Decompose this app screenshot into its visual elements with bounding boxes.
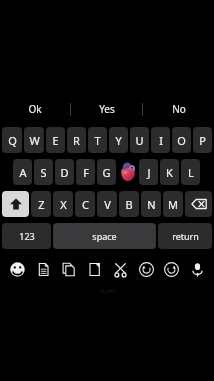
button[interactable]: G — [97, 159, 116, 185]
staticText: X — [60, 197, 67, 212]
button[interactable]: Redo — [160, 258, 182, 280]
button[interactable]: A — [13, 159, 32, 185]
button[interactable]: Backspace — [185, 191, 212, 217]
staticText: INLAM — [99, 288, 115, 295]
staticText: K — [166, 165, 173, 180]
button[interactable]: U — [130, 127, 149, 153]
button[interactable]: W — [24, 127, 44, 153]
button[interactable]: P — [193, 127, 212, 153]
staticText: P — [199, 133, 206, 148]
button[interactable]: V — [97, 191, 117, 217]
staticText: R — [73, 133, 80, 148]
staticText: return — [172, 230, 199, 242]
staticText: U — [135, 133, 144, 148]
button[interactable]: Yes — [71, 95, 142, 123]
staticText: I — [159, 133, 163, 148]
button[interactable]: Shift — [2, 191, 29, 217]
button[interactable]: S — [34, 159, 53, 185]
button[interactable]: C — [75, 191, 95, 217]
staticText: No — [172, 102, 186, 116]
button[interactable]: Paste — [83, 258, 105, 280]
staticText: Y — [115, 133, 122, 148]
button[interactable]: D — [55, 159, 74, 185]
staticText: O — [177, 133, 186, 148]
button[interactable]: L — [181, 159, 200, 185]
button[interactable]: E — [46, 127, 65, 153]
button[interactable]: Undo — [135, 258, 157, 280]
button[interactable]: R — [67, 127, 86, 153]
staticText: G — [102, 165, 111, 180]
button[interactable]: Emoji — [6, 258, 28, 280]
button[interactable]: M — [163, 191, 183, 217]
staticText: space — [92, 230, 117, 242]
staticText: L — [188, 165, 194, 180]
staticText: D — [60, 165, 69, 180]
button[interactable]: J — [139, 159, 158, 185]
button[interactable]: space — [53, 223, 156, 249]
staticText: V — [104, 197, 111, 212]
button[interactable]: N — [141, 191, 161, 217]
button[interactable]: return — [158, 223, 212, 249]
staticText: Q — [8, 133, 17, 148]
staticText: A — [19, 165, 27, 180]
staticText: Z — [38, 197, 45, 212]
staticText: 123 — [19, 230, 35, 242]
button[interactable]: T — [88, 127, 107, 153]
button[interactable]: Document — [32, 258, 54, 280]
button[interactable]: O — [172, 127, 191, 153]
button[interactable]: No — [143, 95, 214, 123]
button[interactable]: I — [151, 127, 170, 153]
button[interactable]: Y — [109, 127, 128, 153]
button[interactable]: Copy — [57, 258, 79, 280]
staticText: B — [125, 197, 133, 212]
staticText: Ok — [28, 102, 42, 116]
staticText: S — [40, 165, 47, 180]
button[interactable]: Voice input — [186, 258, 208, 280]
staticText: M — [168, 197, 178, 212]
staticText: C — [82, 197, 89, 212]
staticText: N — [147, 197, 156, 212]
button[interactable]: Anatomical heart — [118, 159, 137, 185]
button[interactable]: B — [119, 191, 139, 217]
button[interactable]: Ok — [0, 95, 70, 123]
staticText: Yes — [99, 102, 115, 116]
button[interactable]: F — [76, 159, 95, 185]
button[interactable]: X — [53, 191, 73, 217]
button[interactable]: Z — [31, 191, 51, 217]
button[interactable]: 123 — [2, 223, 51, 249]
staticText: F — [83, 165, 89, 180]
staticText: J — [147, 165, 151, 180]
staticText: E — [52, 133, 59, 148]
button[interactable]: K — [160, 159, 179, 185]
button[interactable]: Cut — [109, 258, 131, 280]
staticText: T — [94, 133, 101, 148]
staticText: W — [29, 133, 40, 148]
button[interactable]: Q — [2, 127, 22, 153]
